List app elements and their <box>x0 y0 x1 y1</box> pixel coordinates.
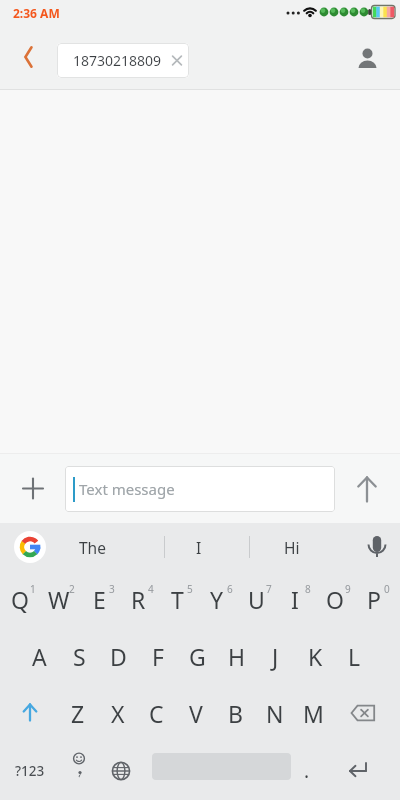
staticText: 18730218809 <box>73 51 162 70</box>
staticText: F <box>152 641 164 672</box>
staticText: G <box>189 641 206 672</box>
staticText: Y <box>210 584 224 615</box>
button[interactable] <box>101 748 141 794</box>
staticText: 8 <box>305 582 311 596</box>
staticText: Q <box>11 584 29 615</box>
staticText: 5 <box>187 582 193 596</box>
button[interactable]: ?123 <box>8 742 52 800</box>
button[interactable]: V <box>176 685 215 742</box>
staticText: C <box>149 698 164 729</box>
staticText: M <box>303 698 324 729</box>
button[interactable] <box>338 748 378 794</box>
button[interactable]: H <box>217 628 256 685</box>
staticText: E <box>93 584 106 615</box>
staticText: 4 <box>148 582 154 596</box>
staticText: V <box>189 698 203 729</box>
staticText: 1 <box>30 582 36 596</box>
staticText: 9 <box>345 582 351 596</box>
button[interactable]: G <box>178 628 217 685</box>
button[interactable] <box>347 469 387 509</box>
button[interactable]: Text message <box>65 466 335 512</box>
staticText: R <box>131 584 146 615</box>
button[interactable] <box>341 691 385 735</box>
staticText: B <box>228 698 243 729</box>
staticText: The <box>79 537 106 558</box>
button[interactable]: . <box>292 742 322 800</box>
staticText: P <box>367 584 381 615</box>
button[interactable]: C <box>137 685 176 742</box>
button[interactable]: L <box>335 628 374 685</box>
button[interactable] <box>348 34 388 74</box>
button[interactable]: I <box>168 523 230 571</box>
staticText: D <box>110 641 127 672</box>
staticText: U <box>248 584 265 615</box>
staticText: 3 <box>109 582 115 596</box>
button[interactable]: 18730218809 <box>57 43 189 78</box>
button[interactable]: Z <box>58 685 97 742</box>
button[interactable]: A <box>20 628 59 685</box>
staticText: 2:36 AM <box>13 5 60 21</box>
staticText: . <box>304 758 310 784</box>
staticText: N <box>266 698 284 729</box>
button[interactable]: T <box>157 571 197 628</box>
staticText: S <box>73 641 86 672</box>
staticText: 0 <box>384 582 390 596</box>
button[interactable]: Q <box>0 571 40 628</box>
button[interactable] <box>357 527 397 567</box>
staticText: ?123 <box>15 762 45 780</box>
button[interactable]: N <box>255 685 294 742</box>
staticText: X <box>111 698 125 729</box>
staticText: Z <box>71 698 85 729</box>
staticText: H <box>228 641 246 672</box>
button[interactable]: K <box>296 628 335 685</box>
button[interactable] <box>14 531 46 563</box>
button[interactable] <box>13 468 53 508</box>
button[interactable]: The <box>56 523 128 571</box>
staticText: 6 <box>227 582 233 596</box>
staticText: 7 <box>266 582 272 596</box>
button[interactable] <box>8 38 46 76</box>
button[interactable]: F <box>138 628 177 685</box>
staticText: W <box>48 584 70 615</box>
button[interactable]: M <box>294 685 333 742</box>
button[interactable]: U <box>236 571 276 628</box>
staticText: T <box>171 584 184 615</box>
staticText: I <box>291 584 299 615</box>
button[interactable]: E <box>79 571 119 628</box>
button[interactable]: W <box>39 571 79 628</box>
button[interactable]: R <box>118 571 158 628</box>
button[interactable]: P <box>354 571 394 628</box>
button[interactable]: X <box>98 685 137 742</box>
staticText: Text message <box>79 479 175 499</box>
staticText: K <box>308 641 323 672</box>
button[interactable] <box>59 745 99 797</box>
button[interactable]: I <box>275 571 315 628</box>
button[interactable]: B <box>216 685 255 742</box>
staticText: I <box>196 537 202 558</box>
button[interactable] <box>8 691 52 735</box>
button[interactable]: Y <box>197 571 237 628</box>
staticText: 2 <box>69 582 75 596</box>
staticText: Hi <box>284 537 300 558</box>
staticText: O <box>326 584 344 615</box>
staticText: J <box>272 641 279 672</box>
staticText: A <box>32 641 47 672</box>
button[interactable]: D <box>99 628 138 685</box>
staticText: L <box>348 641 361 672</box>
button[interactable]: J <box>256 628 295 685</box>
button[interactable]: Hi <box>262 523 322 571</box>
button[interactable]: S <box>60 628 99 685</box>
button[interactable]: O <box>315 571 355 628</box>
